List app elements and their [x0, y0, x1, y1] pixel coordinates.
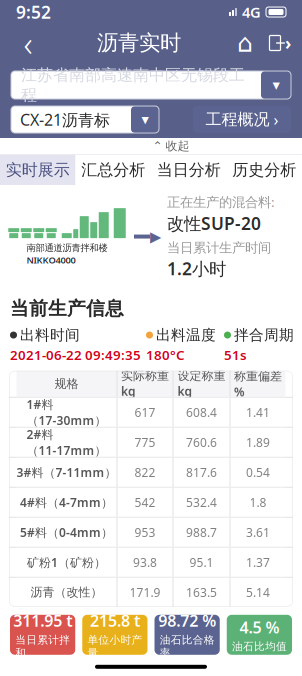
staticText: 760.6 [186, 434, 217, 450]
staticText: ⌃ [152, 139, 162, 153]
staticText: 沥青实时 [97, 30, 181, 56]
staticText: 1#料（17-30mm） [26, 396, 106, 428]
staticText: 历史分析 [232, 160, 296, 180]
staticText: 775 [134, 434, 155, 450]
staticText: 2#料（11-17mm） [26, 426, 106, 458]
button[interactable]: 实时展示 [0, 155, 75, 185]
staticText: 设定称重 kg [177, 368, 225, 399]
staticText: 1.37 [246, 554, 270, 570]
staticText: 当日分析 [157, 160, 221, 180]
button[interactable]: 311.95 t [10, 615, 75, 655]
staticText: 1.89 [246, 434, 270, 450]
staticText: ▶ [150, 228, 161, 245]
staticText: 95.1 [189, 554, 213, 570]
staticText: 实时展示 [6, 160, 70, 180]
staticText: 规格 [54, 376, 78, 391]
staticText: 0.54 [246, 464, 270, 480]
staticText: 收起 [165, 139, 189, 153]
staticText: 215.8 t [90, 610, 140, 631]
staticText: 单位小时产量 [87, 633, 142, 659]
staticText: 4.5 % [239, 617, 279, 638]
staticText: 拌合周期 [234, 326, 294, 344]
staticText: 南部通道沥青拌和楼NIKKO4000 [26, 242, 107, 266]
staticText: 4#料（4-7mm） [20, 494, 113, 510]
button[interactable]: 工程概况 [193, 106, 291, 133]
staticText: 180°C [146, 346, 185, 364]
staticText: 1.2小时 [167, 257, 226, 280]
staticText: 617 [134, 404, 155, 420]
button[interactable]: 215.8 t [82, 615, 147, 655]
staticText: 油石比均值 [232, 640, 287, 653]
button[interactable]: Log out [262, 25, 296, 61]
staticText: 822 [134, 464, 155, 480]
staticText: ‹ [23, 20, 32, 66]
staticText: 矿粉1（矿粉） [27, 554, 106, 570]
staticText: 工程概况 [205, 110, 269, 129]
staticText: 当日累计生产时间 [167, 240, 271, 256]
staticText: 817.6 [186, 464, 217, 480]
staticText: 542 [134, 494, 155, 510]
staticText: 988.7 [186, 524, 217, 540]
staticText: 出料温度 [156, 326, 216, 344]
staticText: 608.4 [186, 404, 217, 420]
staticText: 51s [224, 346, 247, 364]
staticText: › [285, 31, 291, 54]
staticText: 出料时间 [20, 326, 80, 344]
staticText: 油石比合格率 [160, 633, 215, 659]
staticText: 称重偏差 % [234, 368, 282, 400]
staticText: CX-21沥青标 [20, 109, 110, 130]
staticText: 1.8 [249, 494, 266, 510]
staticText: 实际称重 kg [121, 368, 169, 399]
staticText: 江苏省南部高速南中区无锡段工程 [21, 65, 245, 105]
staticText: 3#料（7-11mm） [16, 464, 116, 480]
staticText: 汇总分析 [81, 160, 145, 180]
button[interactable]: 汇总分析 [75, 155, 151, 185]
staticText: 4G [242, 2, 261, 22]
staticText: 5.14 [246, 584, 270, 600]
staticText: 沥青（改性） [30, 585, 102, 600]
staticText: 98.72 % [158, 610, 216, 631]
staticText: 当前生产信息 [10, 297, 124, 320]
staticText: 171.9 [129, 584, 160, 600]
staticText: 1.41 [246, 404, 270, 420]
staticText: ⌂ [237, 29, 253, 57]
button[interactable]: 江苏省南部高速南中区无锡段工程 [11, 71, 291, 99]
button[interactable]: 当日分析 [151, 155, 226, 185]
button[interactable]: 4.5 % [227, 615, 292, 655]
staticText: 正在生产的混合料: [167, 193, 275, 211]
staticText: 5#料（0-4mm） [20, 524, 113, 540]
staticText: 9:52 [16, 0, 51, 23]
staticText: 改性SUP-20 [167, 212, 261, 235]
staticText: 532.4 [186, 494, 217, 510]
button[interactable]: Home [228, 25, 262, 61]
staticText: 311.95 t [13, 610, 72, 631]
staticText: 953 [134, 524, 155, 540]
button[interactable]: ⌃ [144, 138, 198, 153]
button[interactable]: Back [6, 25, 50, 61]
button[interactable]: 98.72 % [154, 615, 220, 655]
staticText: › [273, 109, 278, 130]
button[interactable]: 历史分析 [226, 155, 302, 185]
staticText: 93.8 [133, 554, 157, 570]
staticText: 当日累计拌和 [15, 633, 70, 659]
staticText: ▾ [272, 77, 279, 93]
staticText: ▾ [141, 111, 148, 128]
staticText: 2021-06-22 09:49:35 [10, 346, 141, 364]
staticText: 163.5 [186, 584, 217, 600]
button[interactable]: CX-21沥青标 [11, 106, 159, 133]
staticText: 3.61 [246, 524, 270, 540]
